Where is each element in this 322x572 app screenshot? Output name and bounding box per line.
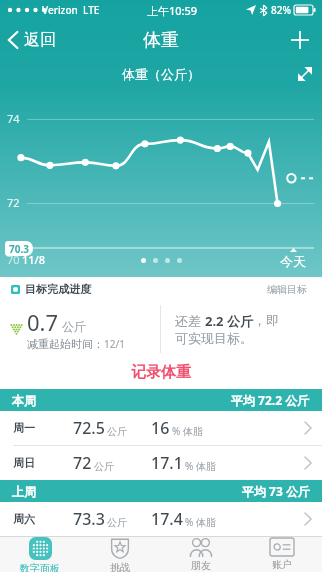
staticText: 公斤 xyxy=(107,425,127,438)
staticText: % xyxy=(185,515,194,529)
staticText: 还差 xyxy=(175,312,205,330)
staticText: 公斤 xyxy=(62,319,86,334)
staticText: 账户 xyxy=(272,558,292,571)
button[interactable]: 周一 xyxy=(0,411,322,445)
staticText: 17.4 xyxy=(151,508,183,530)
staticText: 体脂 xyxy=(196,516,216,529)
staticText: 12/1 xyxy=(104,337,125,351)
staticText: 11/8 xyxy=(22,252,46,267)
staticText: 今天 xyxy=(280,253,306,269)
button[interactable]: 今天 xyxy=(280,248,306,269)
staticText: 82% xyxy=(271,3,291,17)
staticText: 编辑目标 xyxy=(267,283,307,296)
staticText: 本周 xyxy=(12,393,36,408)
button[interactable]: 编辑目标 xyxy=(263,279,311,300)
staticText: 周六 xyxy=(13,512,73,526)
staticText: 2.2 公斤 xyxy=(205,312,253,330)
staticText: 体脂 xyxy=(183,425,203,438)
staticText: 72.5 xyxy=(73,417,105,439)
staticText: % xyxy=(172,424,181,438)
button[interactable]: 周六 xyxy=(0,502,322,536)
staticText: 可实现目标。 xyxy=(175,330,253,346)
staticText: 朋友 xyxy=(191,559,211,572)
staticText: 体脂 xyxy=(196,460,216,473)
staticText: ，即 xyxy=(253,312,279,328)
button[interactable]: Add weight xyxy=(278,20,322,60)
staticText: 17.1 xyxy=(151,452,183,474)
staticText: 周日 xyxy=(13,456,73,470)
staticText: 减重起始时间： xyxy=(27,337,104,351)
staticText: 公斤 xyxy=(107,516,127,529)
staticText: 周一 xyxy=(13,421,73,435)
button[interactable]: 数字面板 xyxy=(0,537,80,572)
button[interactable]: 周日 xyxy=(0,446,322,480)
staticText: 72 xyxy=(7,195,20,210)
staticText: 返回 xyxy=(24,30,56,50)
button[interactable]: 记录体重 xyxy=(0,357,322,387)
staticText: LTE xyxy=(83,3,100,17)
staticText: 70 xyxy=(7,252,20,267)
staticText: 平均 73 公斤 xyxy=(242,483,310,499)
staticText: 目标完成进度 xyxy=(25,282,91,296)
staticText: 上周 xyxy=(12,484,36,499)
staticText: 72 xyxy=(73,452,92,474)
staticText: 体重（公斤） xyxy=(122,66,200,82)
staticText: 74 xyxy=(7,111,20,126)
staticText: % xyxy=(185,459,194,473)
staticText: 70.3 xyxy=(9,242,29,256)
staticText: 体重 xyxy=(143,29,179,52)
staticText: 16 xyxy=(151,417,170,439)
button[interactable]: 挑战 xyxy=(80,537,160,572)
button[interactable]: 账户 xyxy=(241,537,322,572)
staticText: 记录体重 xyxy=(131,363,191,382)
staticText: Verizon xyxy=(42,3,78,17)
staticText: 0.7 xyxy=(27,307,59,337)
staticText: 上午10:59 xyxy=(147,3,198,18)
button[interactable]: 朋友 xyxy=(160,537,241,572)
staticText: 平均 72.2 公斤 xyxy=(231,392,310,408)
staticText: 73.3 xyxy=(73,508,105,530)
staticText: 数字面板 xyxy=(20,562,60,572)
staticText: 公斤 xyxy=(94,460,114,473)
button[interactable]: Expand chart xyxy=(288,60,322,88)
button[interactable]: 返回 xyxy=(0,20,66,60)
staticText: 挑战 xyxy=(110,561,130,572)
